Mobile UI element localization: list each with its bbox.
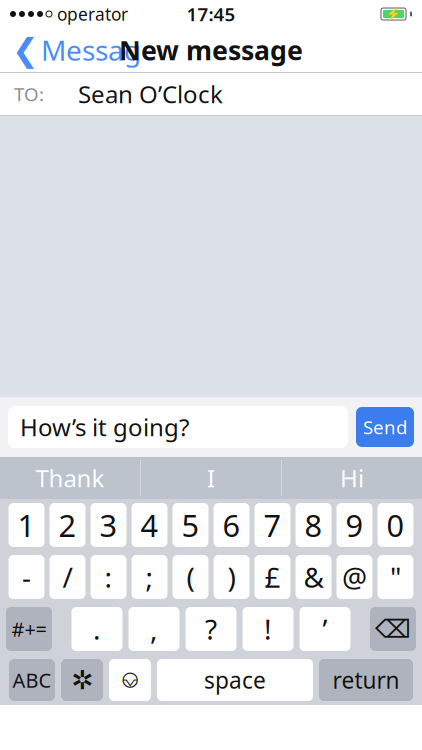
button[interactable]: ❮ (4, 28, 165, 72)
staticText: ( (186, 558, 194, 596)
button[interactable]: 3 (90, 503, 126, 547)
staticText: Sean O’Clock (78, 78, 223, 110)
staticText: operator (57, 2, 128, 25)
staticText: New message (119, 32, 303, 68)
button[interactable]: #+= (6, 607, 52, 651)
button[interactable]: 2 (49, 503, 85, 547)
staticText: ’ (322, 610, 327, 648)
staticText: 5 (181, 505, 199, 545)
staticText: 7 (263, 505, 281, 545)
button[interactable]: ( (172, 555, 208, 599)
button[interactable]: 1 (8, 503, 44, 547)
staticText: 4 (140, 505, 158, 545)
staticText: @ (342, 558, 367, 596)
button[interactable]: ABC (9, 659, 55, 701)
button[interactable]: return (319, 659, 413, 701)
staticText: ABC (12, 667, 51, 693)
staticText: ⎉ (120, 668, 140, 692)
staticText: , (150, 610, 158, 648)
button[interactable]: ’ (299, 607, 350, 651)
button[interactable]: Hi (282, 457, 422, 499)
button[interactable]: space (157, 659, 313, 701)
staticText: & (303, 558, 323, 596)
staticText: " (390, 558, 401, 596)
button[interactable]: 8 (295, 503, 331, 547)
staticText: #+= (11, 616, 46, 642)
button[interactable]: Delete (370, 607, 416, 651)
button[interactable]: Thank (0, 457, 140, 499)
button[interactable]: , (128, 607, 179, 651)
button[interactable]: ) (213, 555, 249, 599)
staticText: TO: (14, 82, 44, 106)
staticText: / (62, 558, 72, 596)
button[interactable]: @ (336, 555, 372, 599)
button[interactable]: Send (356, 407, 414, 447)
button[interactable]: ; (131, 555, 167, 599)
staticText: 17:45 (186, 2, 235, 26)
staticText: Hi (340, 462, 364, 494)
staticText: ; (145, 558, 153, 596)
staticText: I (207, 462, 215, 494)
staticText: Send (363, 415, 407, 439)
staticText: ? (205, 610, 217, 648)
staticText: Message (41, 31, 157, 69)
staticText: Thank (35, 462, 104, 494)
button[interactable]: I (141, 457, 281, 499)
button[interactable]: Next keyboard (61, 659, 103, 701)
staticText: ⌫ (375, 615, 411, 643)
staticText: How’s it going? (20, 411, 189, 443)
staticText: 9 (345, 505, 363, 545)
staticText: space (204, 665, 266, 695)
button[interactable]: " (377, 555, 413, 599)
button[interactable]: : (90, 555, 126, 599)
staticText: - (22, 558, 31, 596)
button[interactable]: / (49, 555, 85, 599)
button[interactable]: 6 (213, 503, 249, 547)
staticText: return (332, 665, 399, 695)
staticText: ! (264, 610, 272, 648)
staticText: ) (227, 558, 235, 596)
button[interactable]: 4 (131, 503, 167, 547)
button[interactable]: Dictate (109, 659, 151, 701)
button[interactable]: 7 (254, 503, 290, 547)
staticText: 8 (304, 505, 322, 545)
staticText: 3 (99, 505, 117, 545)
button[interactable]: . (71, 607, 122, 651)
staticText: ❮ (12, 32, 39, 68)
staticText: ✲ (71, 665, 93, 695)
button[interactable]: 9 (336, 503, 372, 547)
button[interactable]: - (8, 555, 44, 599)
staticText: 1 (17, 505, 35, 545)
button[interactable]: £ (254, 555, 290, 599)
button[interactable]: 0 (377, 503, 413, 547)
staticText: £ (264, 558, 280, 596)
staticText: ⚡ (386, 7, 401, 21)
staticText: 2 (58, 505, 76, 545)
button[interactable]: 5 (172, 503, 208, 547)
button[interactable]: & (295, 555, 331, 599)
staticText: . (93, 610, 101, 648)
button[interactable]: ! (242, 607, 293, 651)
staticText: 0 (386, 505, 404, 545)
button[interactable]: ? (185, 607, 236, 651)
staticText: : (104, 558, 112, 596)
staticText: 6 (222, 505, 240, 545)
